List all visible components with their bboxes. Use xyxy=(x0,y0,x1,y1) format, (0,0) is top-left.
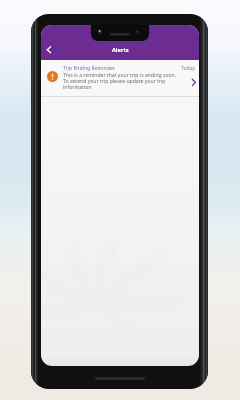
button[interactable]: Trip Ending Reminder xyxy=(41,60,199,97)
staticText: information xyxy=(63,84,92,91)
staticText: Today xyxy=(181,65,196,72)
staticText: This is a reminder that your trip is end… xyxy=(63,72,177,79)
staticText: Trip Ending Reminder xyxy=(63,65,115,72)
button[interactable]: Open alert xyxy=(186,74,199,90)
staticText: To extend your trip please update your t… xyxy=(63,78,166,85)
staticText: Alerts xyxy=(112,46,129,54)
button[interactable]: Back xyxy=(41,42,57,58)
